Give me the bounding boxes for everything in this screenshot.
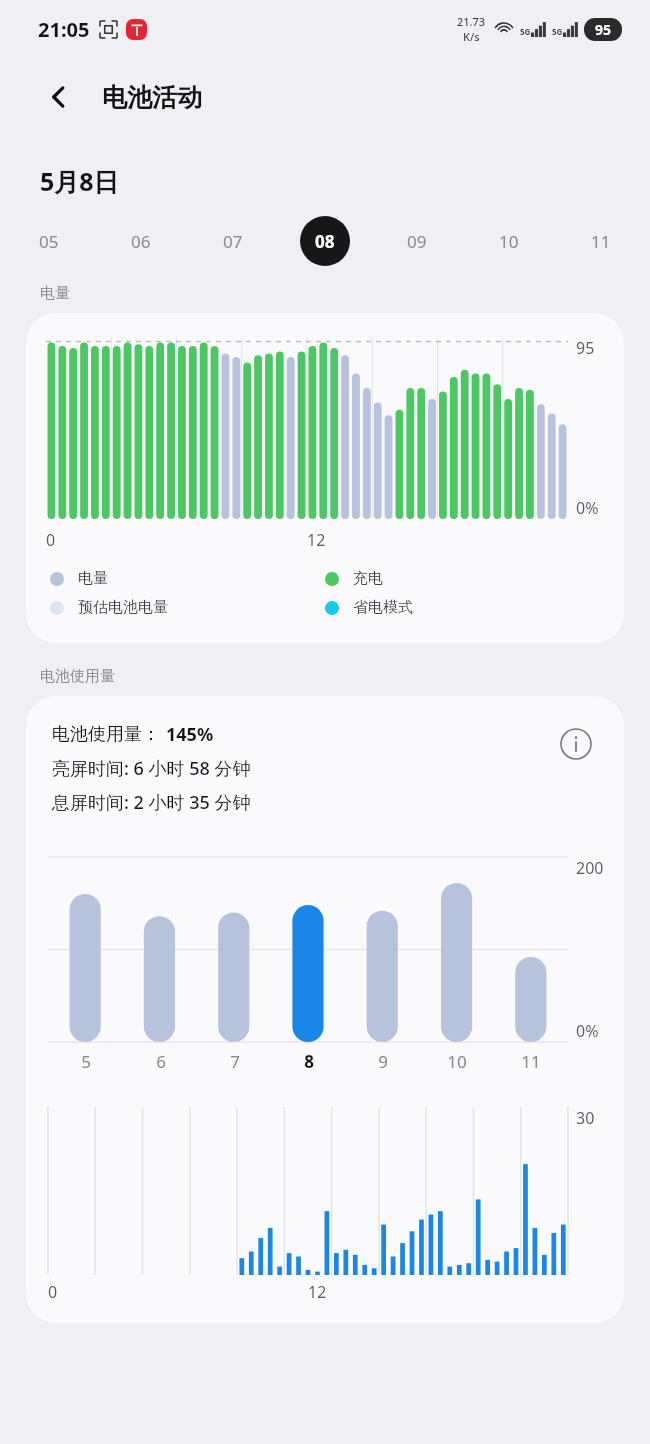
button[interactable]: 电池使用量： [26, 696, 624, 1323]
button[interactable]: Info [554, 722, 598, 766]
staticText: 8 [304, 1050, 314, 1073]
staticText: 电量 [40, 284, 70, 303]
staticText: 电池使用量 [40, 667, 115, 686]
staticText: 7 [230, 1050, 240, 1073]
staticText: 200 [576, 857, 604, 879]
staticText: 0 [48, 1281, 58, 1303]
staticText: 10 [447, 1050, 467, 1073]
staticText: 95 [576, 337, 595, 359]
button[interactable]: Back [38, 76, 80, 118]
staticText: 21:05 [38, 16, 90, 43]
staticText: 06 [131, 230, 151, 253]
staticText: 11 [591, 230, 611, 253]
staticText: 21.73 [457, 14, 486, 29]
button[interactable]: 11 [576, 216, 626, 266]
staticText: 5G [520, 26, 531, 37]
staticText: 12 [307, 529, 326, 551]
button[interactable]: 08 [300, 216, 350, 266]
staticText: 145% [166, 722, 214, 747]
staticText: 30 [576, 1107, 595, 1129]
staticText: 息屏时间: 2 小时 35 分钟 [52, 790, 251, 815]
button[interactable]: 95 [26, 313, 624, 643]
staticText: 0% [576, 497, 599, 519]
button[interactable]: 06 [116, 216, 166, 266]
staticText: 5G [552, 26, 563, 37]
staticText: 6 [156, 1050, 166, 1073]
staticText: 省电模式 [353, 598, 413, 617]
staticText: 05 [39, 230, 59, 253]
staticText: 07 [223, 230, 243, 253]
staticText: 5 [81, 1050, 91, 1073]
staticText: 充电 [353, 569, 383, 588]
button[interactable]: 10 [484, 216, 534, 266]
staticText: 电量 [78, 569, 108, 588]
staticText: 9 [378, 1050, 388, 1073]
staticText: 预估电池电量 [78, 598, 168, 617]
staticText: 08 [315, 230, 335, 253]
staticText: 12 [308, 1281, 327, 1303]
staticText: 5月8日 [40, 164, 119, 198]
staticText: 11 [521, 1050, 541, 1073]
staticText: 亮屏时间: 6 小时 58 分钟 [52, 756, 251, 781]
staticText: 0 [46, 529, 56, 551]
staticText: 电池使用量： [52, 723, 160, 746]
button[interactable]: 05 [24, 216, 74, 266]
button[interactable]: 07 [208, 216, 258, 266]
staticText: 0% [576, 1020, 599, 1042]
staticText: 09 [407, 230, 427, 253]
staticText: K/s [463, 29, 480, 44]
staticText: 95 [595, 20, 612, 39]
button[interactable]: 09 [392, 216, 442, 266]
staticText: 电池活动 [102, 82, 202, 113]
staticText: 10 [499, 230, 519, 253]
